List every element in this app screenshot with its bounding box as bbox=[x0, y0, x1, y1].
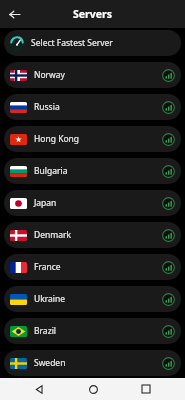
button[interactable]: Recents bbox=[137, 380, 155, 398]
button[interactable]: Hong Kong bbox=[4, 126, 181, 152]
staticText: Sweden bbox=[34, 357, 162, 369]
staticText: Norway bbox=[34, 69, 162, 81]
staticText: Denmark bbox=[34, 229, 162, 241]
staticText: France bbox=[34, 261, 162, 273]
staticText: Select Fastest Server bbox=[31, 37, 113, 49]
button[interactable]: Russia bbox=[4, 94, 181, 120]
staticText: Servers bbox=[73, 7, 112, 21]
button[interactable]: Home bbox=[84, 380, 102, 398]
staticText: Russia bbox=[34, 101, 162, 113]
staticText: Ukraine bbox=[34, 293, 162, 305]
button[interactable]: Back bbox=[4, 4, 24, 24]
button[interactable]: Denmark bbox=[4, 222, 181, 248]
button[interactable]: Back bbox=[30, 380, 48, 398]
button[interactable]: Ukraine bbox=[4, 286, 181, 312]
button[interactable]: Bulgaria bbox=[4, 158, 181, 184]
staticText: Japan bbox=[34, 197, 162, 209]
staticText: Bulgaria bbox=[34, 165, 162, 177]
button[interactable]: France bbox=[4, 254, 181, 280]
button[interactable]: Brazil bbox=[4, 318, 181, 344]
staticText: Hong Kong bbox=[34, 133, 162, 145]
button[interactable]: Sweden bbox=[4, 350, 181, 376]
button[interactable]: Norway bbox=[4, 62, 181, 88]
button[interactable]: Select Fastest Server bbox=[4, 30, 181, 56]
button[interactable]: Japan bbox=[4, 190, 181, 216]
staticText: Brazil bbox=[34, 325, 162, 337]
